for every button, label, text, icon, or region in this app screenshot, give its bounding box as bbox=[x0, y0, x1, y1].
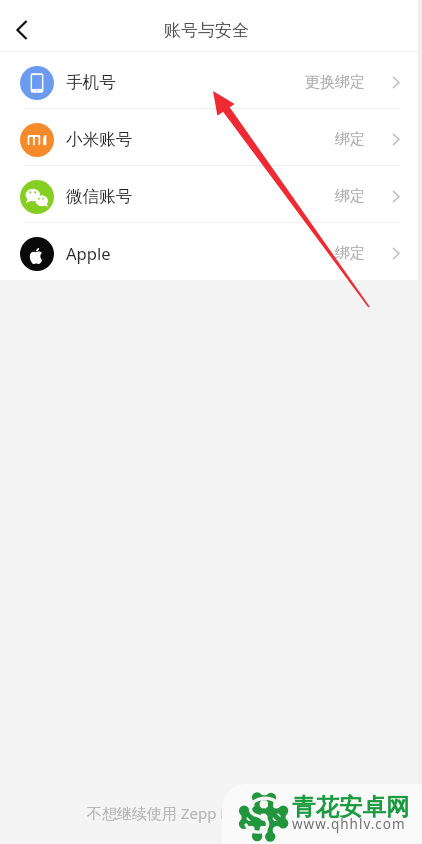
staticText: 绑定 bbox=[335, 130, 365, 149]
staticText: 不想继续使用 Zepp Life？注销账号 bbox=[87, 803, 321, 823]
button[interactable]: 微信账号 bbox=[0, 166, 422, 223]
staticText: 账号与安全 bbox=[164, 20, 249, 41]
staticText: www.qhhlv.com bbox=[292, 815, 406, 833]
staticText: Apple bbox=[66, 242, 111, 265]
staticText: 青花安卓网 bbox=[292, 792, 410, 822]
button[interactable]: 手机号 bbox=[0, 52, 422, 109]
button[interactable]: Apple bbox=[0, 223, 422, 280]
staticText: 小米账号 bbox=[66, 129, 133, 150]
staticText: 更换绑定 bbox=[305, 73, 365, 92]
staticText: 绑定 bbox=[335, 187, 365, 206]
button[interactable]: Back bbox=[0, 8, 44, 52]
staticText: 微信账号 bbox=[66, 186, 133, 207]
staticText: 手机号 bbox=[66, 72, 116, 93]
button[interactable]: 小米账号 bbox=[0, 109, 422, 166]
staticText: 绑定 bbox=[335, 244, 365, 263]
